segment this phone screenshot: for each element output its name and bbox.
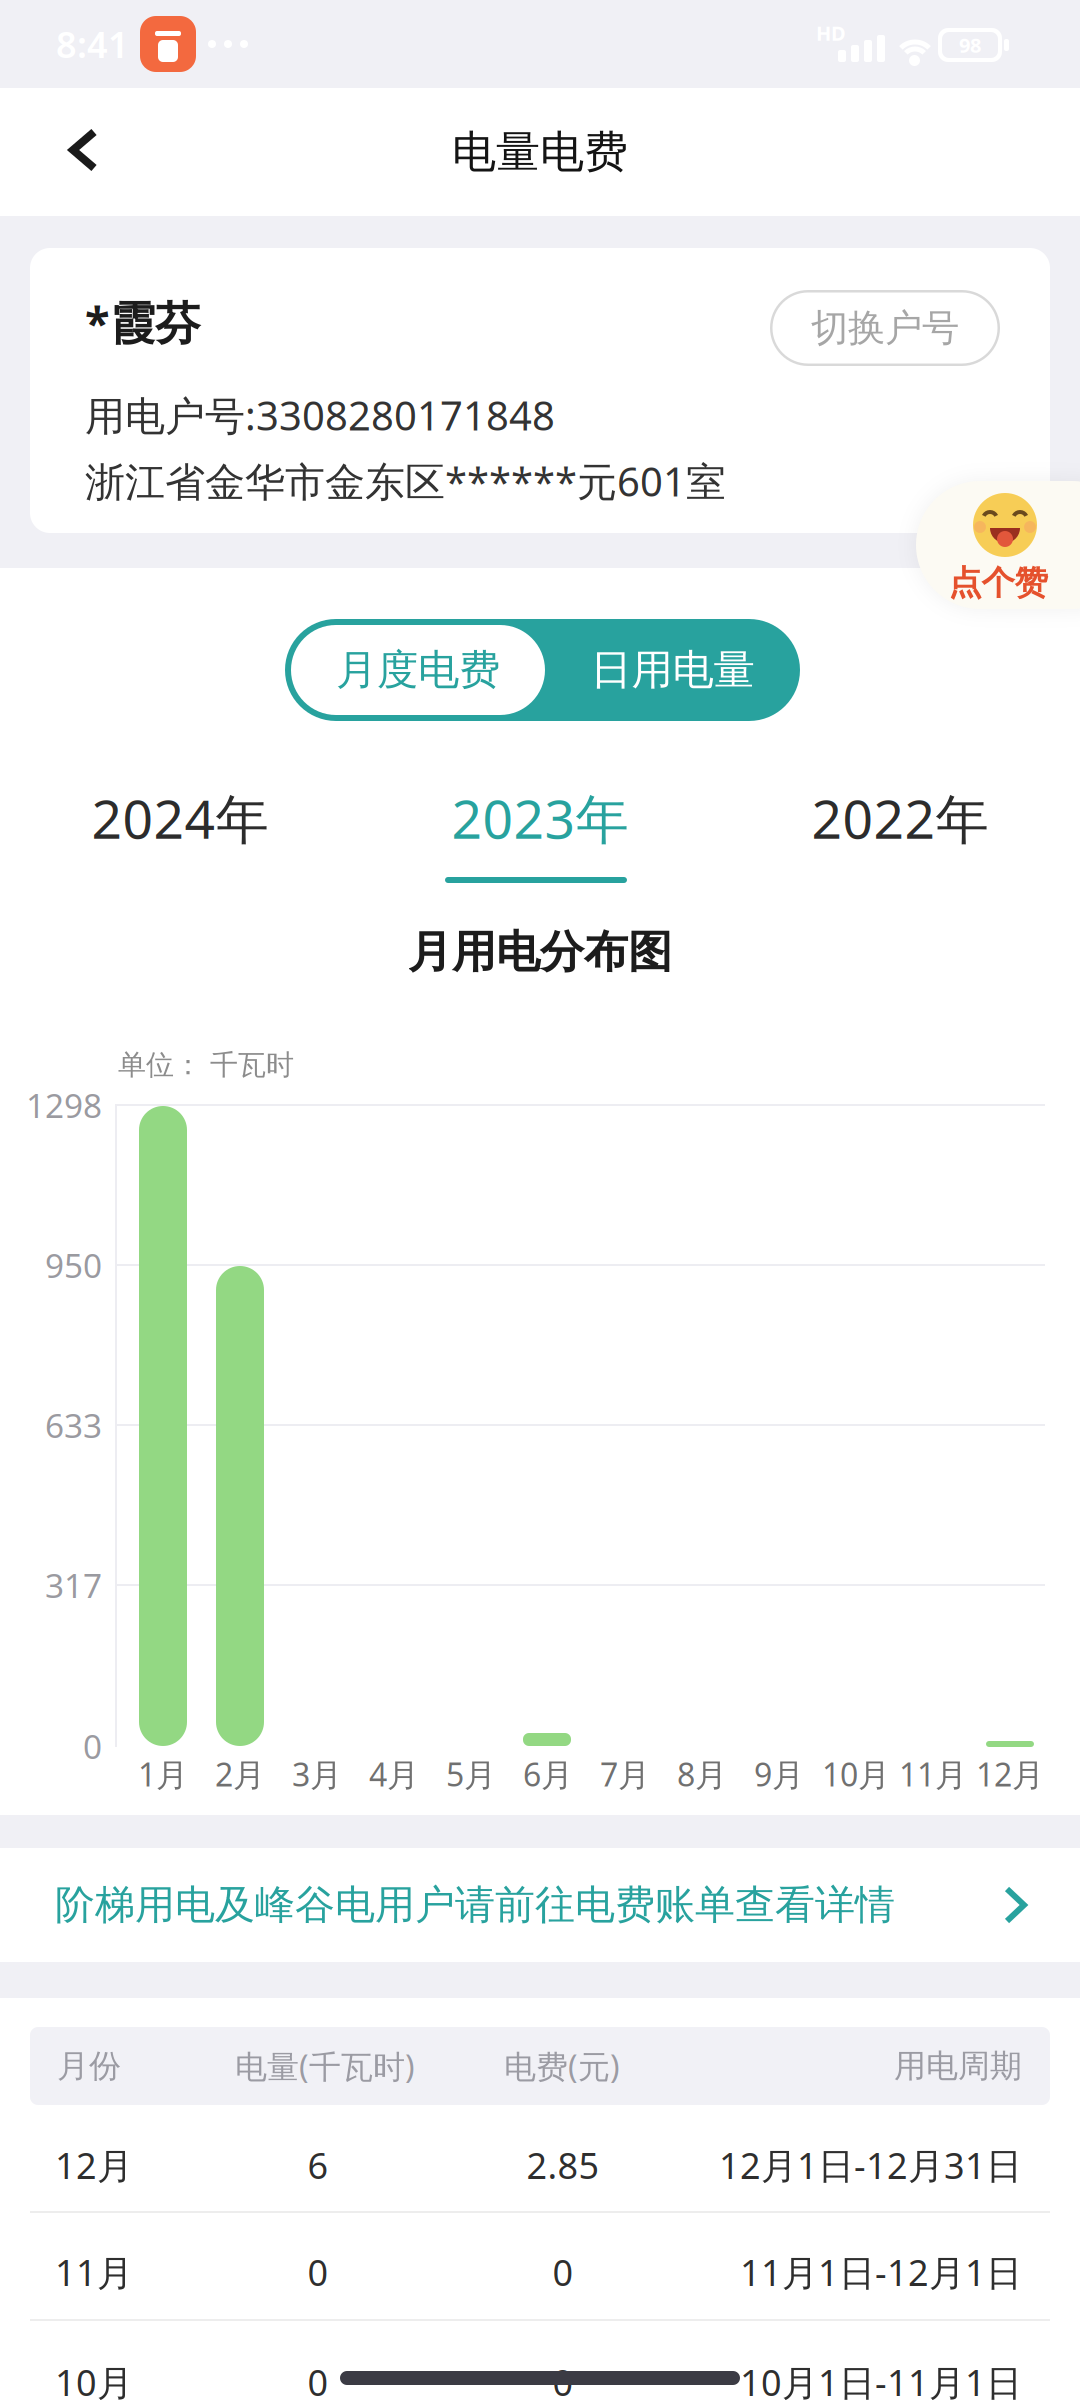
staticText: 8:41 (56, 20, 129, 68)
staticText: 98 (959, 32, 981, 58)
staticText: 月份 (57, 2046, 121, 2086)
button[interactable]: 2023年 (360, 778, 720, 858)
staticText: 11月 (899, 1753, 967, 1795)
staticText: 5月 (446, 1753, 496, 1795)
staticText: 8月 (677, 1753, 727, 1795)
staticText: 7月 (600, 1753, 650, 1795)
staticText: 12月 (976, 1753, 1044, 1795)
staticText: 0 (552, 2248, 573, 2296)
button[interactable]: 2022年 (720, 778, 1080, 858)
staticText: 9月 (754, 1753, 804, 1795)
button[interactable]: Back (64, 126, 120, 174)
staticText: 11月1日-12月1日 (740, 2248, 1022, 2296)
button[interactable]: 月度电费 (291, 625, 545, 715)
staticText: 单位： 千瓦时 (118, 1048, 294, 1082)
staticText: 12月1日-12月31日 (719, 2141, 1022, 2189)
staticText: 用电周期 (894, 2046, 1022, 2086)
staticText: 2023年 (451, 783, 628, 853)
staticText: 电费(元) (504, 2045, 620, 2087)
staticText: 6月 (523, 1753, 573, 1795)
staticText: 日用电量 (590, 645, 754, 695)
staticText: 2.85 (526, 2141, 599, 2189)
staticText: 12月 (55, 2141, 133, 2189)
staticText: 11月 (55, 2248, 133, 2296)
staticText: 2024年 (91, 783, 268, 853)
staticText: 2022年 (811, 783, 988, 853)
button[interactable]: 切换户号 (770, 290, 1000, 366)
staticText: 0 (307, 2358, 328, 2400)
staticText: 633 (45, 1403, 102, 1447)
staticText: 6 (307, 2141, 328, 2189)
staticText: 1298 (26, 1083, 102, 1127)
staticText: *霞芬 (85, 292, 200, 352)
staticText: 950 (45, 1243, 102, 1287)
staticText: 0 (307, 2248, 328, 2296)
staticText: 月用电分布图 (408, 925, 672, 979)
staticText: 10月1日-11月1日 (740, 2358, 1022, 2400)
staticText: 0 (552, 2358, 573, 2400)
button[interactable]: 2024年 (0, 778, 360, 858)
staticText: 切换户号 (811, 305, 959, 351)
staticText: HD (816, 20, 846, 46)
button[interactable]: 点个赞 (916, 481, 1080, 609)
staticText: 317 (45, 1563, 102, 1607)
staticText: 10月 (55, 2358, 133, 2400)
staticText: 点个赞 (948, 562, 1047, 603)
staticText: 电量电费 (452, 125, 628, 179)
staticText: 2月 (215, 1753, 265, 1795)
staticText: 0 (83, 1724, 102, 1768)
button[interactable]: 日用电量 (545, 619, 800, 721)
staticText: 浙江省金华市金东区******元601室 (85, 454, 726, 507)
staticText: 阶梯用电及峰谷电用户请前往电费账单查看详情 (55, 1880, 895, 1929)
button[interactable]: 阶梯用电及峰谷电用户请前往电费账单查看详情 (0, 1848, 1080, 1962)
staticText: 月度电费 (336, 645, 500, 695)
staticText: 3月 (292, 1753, 342, 1795)
staticText: 10月 (822, 1753, 890, 1795)
staticText: 1月 (138, 1753, 188, 1795)
staticText: 用电户号:3308280171848 (85, 388, 555, 441)
staticText: 电量(千瓦时) (235, 2045, 415, 2087)
staticText: 4月 (369, 1753, 419, 1795)
